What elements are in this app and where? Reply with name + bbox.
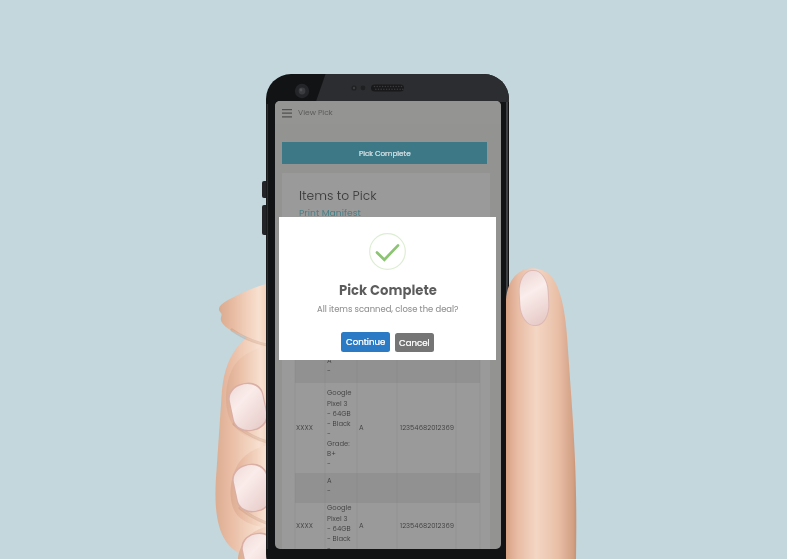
staticText: 123546820123695	[400, 423, 456, 433]
staticText: Pick Complete	[359, 148, 411, 158]
staticText: XXXX	[296, 423, 313, 433]
staticText: A	[359, 423, 364, 433]
button[interactable]: Continue	[341, 332, 390, 352]
staticText: All items scanned, close the deal?	[317, 303, 459, 315]
staticText: Cancel	[399, 337, 430, 349]
staticText: XXXX	[296, 521, 313, 531]
staticText: A	[327, 476, 332, 486]
staticText: 123546820123695	[400, 521, 456, 531]
staticText: A	[327, 356, 332, 366]
button[interactable]: Print Manifest	[299, 206, 361, 219]
staticText: -	[327, 486, 331, 496]
staticText: View Pick	[298, 107, 333, 118]
staticText: Continue	[346, 336, 386, 348]
staticText: A	[359, 521, 364, 531]
button[interactable]: Pick Complete	[282, 142, 487, 164]
staticText: Items to Pick	[299, 187, 377, 204]
staticText: Google Pixel 3 - 64GB - Black - Grade: B…	[327, 388, 352, 468]
staticText: -	[327, 366, 331, 376]
staticText: Pick Complete	[339, 281, 437, 299]
staticText: Google Pixel 3 - 64GB - Black - Grade: B…	[327, 503, 352, 549]
button[interactable]: Open navigation menu	[279, 105, 295, 121]
button[interactable]: Cancel	[395, 333, 434, 352]
